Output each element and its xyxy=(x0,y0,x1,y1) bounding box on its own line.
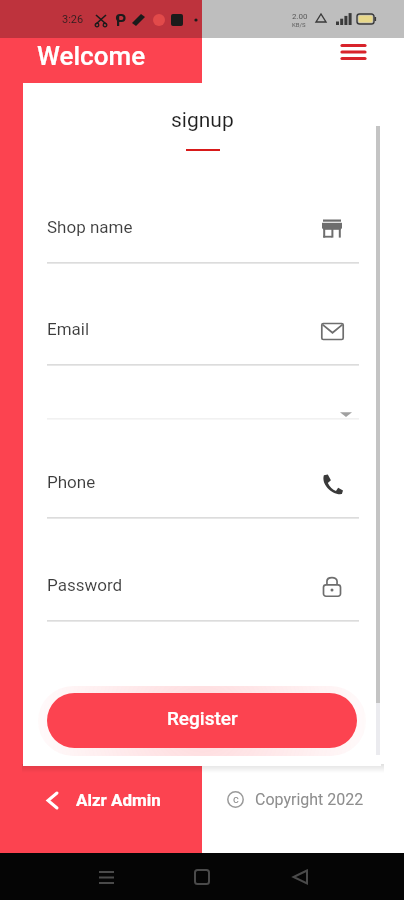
button[interactable]: Back xyxy=(280,857,320,897)
staticText: Copyright 2022 xyxy=(255,790,364,809)
staticText: Password xyxy=(47,575,123,595)
staticText: Alzr Admin xyxy=(76,790,161,810)
staticText: 2.00 xyxy=(292,12,308,21)
staticText: Shop name xyxy=(47,217,133,237)
staticText: c xyxy=(233,793,239,806)
staticText: signup xyxy=(171,108,234,133)
staticText: Welcome xyxy=(37,41,146,71)
button[interactable]: Recents xyxy=(86,857,126,897)
staticText: Phone xyxy=(47,472,96,492)
button[interactable]: Alzr Admin xyxy=(47,787,161,813)
button[interactable]: Register xyxy=(47,693,357,748)
staticText: Register xyxy=(167,707,238,729)
staticText: 3:26 xyxy=(62,13,84,26)
button[interactable]: Menu xyxy=(331,30,375,74)
button[interactable]: signup xyxy=(160,108,244,156)
staticText: Email xyxy=(47,319,90,339)
staticText: KB/S xyxy=(292,21,306,28)
button[interactable]: Home xyxy=(182,857,222,897)
